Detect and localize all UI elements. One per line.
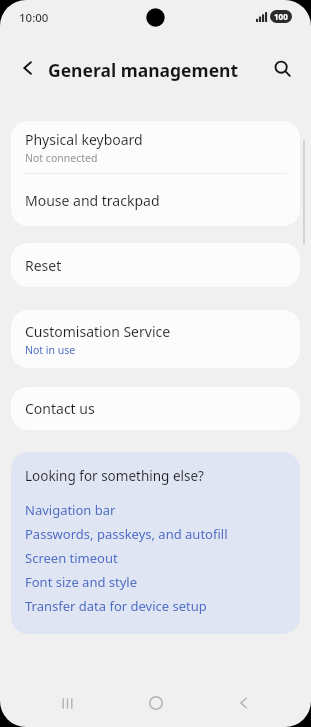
staticText: 10:00	[19, 10, 49, 26]
button[interactable]: Search	[266, 52, 298, 84]
staticText: Passwords, passkeys, and autofill	[25, 525, 228, 543]
staticText: Customisation Service	[25, 322, 171, 341]
button[interactable]: Home	[134, 681, 178, 725]
button[interactable]: Navigation bar	[25, 498, 300, 522]
button[interactable]: Mouse and trackpad	[11, 174, 300, 226]
staticText: Font size and style	[25, 573, 138, 591]
button[interactable]: Recent apps	[45, 681, 89, 725]
button[interactable]: Screen timeout	[25, 546, 300, 570]
button[interactable]: Transfer data for device setup	[25, 594, 300, 618]
button[interactable]: Contact us	[11, 387, 300, 430]
button[interactable]: Back	[12, 52, 44, 84]
staticText: Transfer data for device setup	[25, 597, 207, 615]
button[interactable]: Font size and style	[25, 570, 300, 594]
staticText: Reset	[25, 256, 62, 275]
staticText: General management	[48, 58, 239, 82]
button[interactable]: Back	[222, 681, 266, 725]
button[interactable]: Reset	[11, 243, 300, 287]
button[interactable]: Passwords, passkeys, and autofill	[25, 522, 300, 546]
staticText: Mouse and trackpad	[25, 191, 160, 210]
staticText: Navigation bar	[25, 501, 116, 519]
staticText: Not in use	[25, 343, 76, 357]
staticText: Looking for something else?	[25, 467, 204, 485]
staticText: Contact us	[25, 399, 95, 418]
staticText: Not connected	[25, 151, 98, 165]
staticText: Screen timeout	[25, 549, 118, 567]
staticText: Physical keyboard	[25, 130, 143, 149]
staticText: 100	[274, 11, 288, 22]
button[interactable]: Customisation Service	[11, 310, 300, 368]
button[interactable]: Physical keyboard	[11, 121, 300, 173]
